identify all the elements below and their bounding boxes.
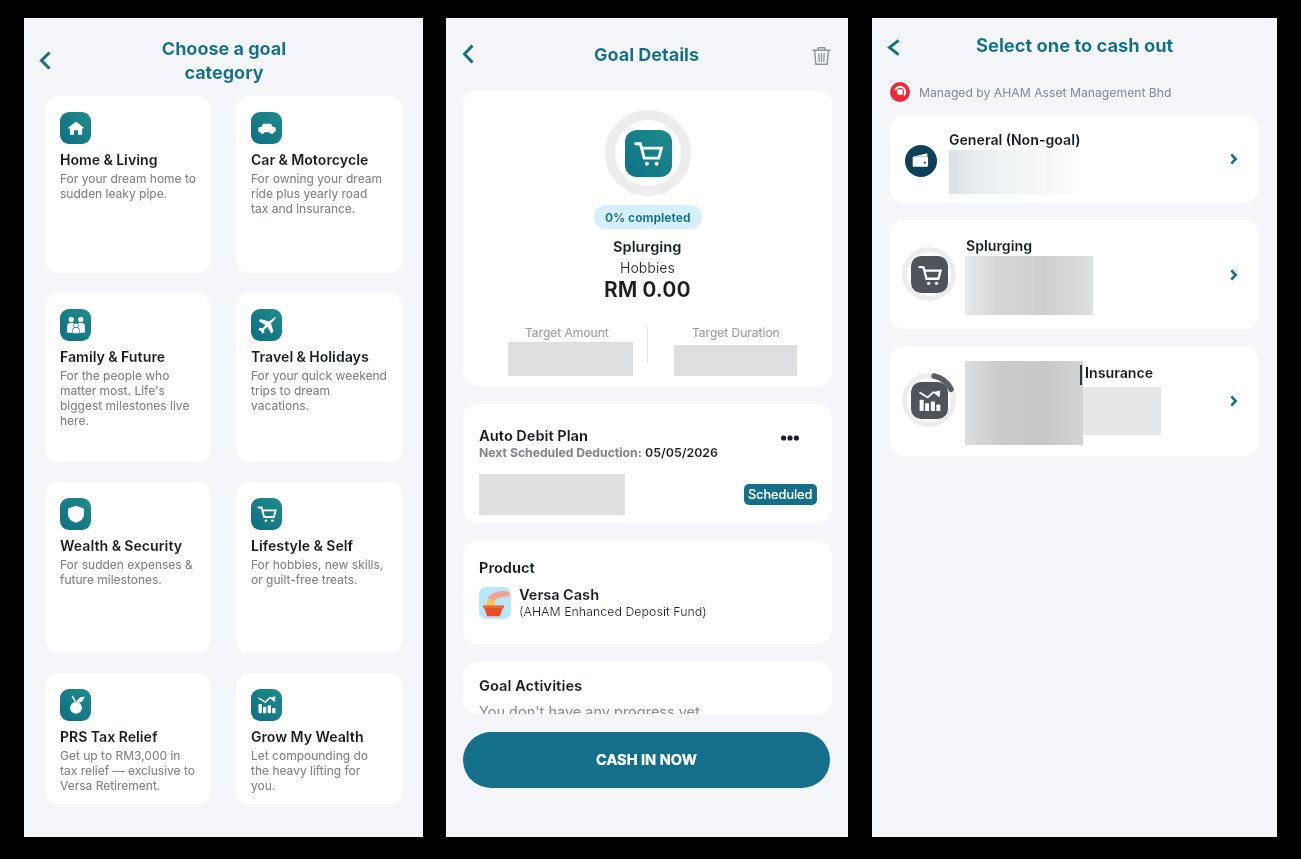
staticText: Car & Motorcycle — [251, 151, 369, 168]
staticText: Target Amount — [525, 325, 609, 340]
staticText: CASH IN NOW — [596, 751, 697, 769]
staticText: Select one to cash out — [976, 34, 1174, 56]
staticText: Grow My Wealth — [251, 728, 364, 745]
button[interactable]: Car & Motorcycle — [236, 96, 403, 273]
staticText: Family & Future — [60, 348, 166, 365]
staticText: Versa Cash — [519, 586, 600, 603]
staticText: For the people who matter most. Life's b… — [60, 368, 196, 428]
staticText: RM 0.00 — [604, 277, 691, 302]
staticText: Managed by AHAM Asset Management Bhd — [919, 85, 1172, 100]
staticText: Splurging — [966, 237, 1033, 254]
staticText: Lifestyle & Self — [251, 537, 354, 554]
staticText: Target Duration — [692, 325, 780, 340]
button[interactable]: Back — [888, 39, 900, 56]
staticText: For your dream home to sudden leaky pipe… — [60, 171, 196, 201]
staticText: Auto Debit Plan — [479, 427, 589, 445]
button[interactable]: Travel & Holidays — [236, 293, 403, 462]
staticText: Product — [479, 559, 535, 577]
button[interactable]: Grow My Wealth — [236, 673, 403, 804]
staticText: (AHAM Enhanced Deposit Fund) — [519, 604, 707, 619]
staticText: For owning your dream ride plus yearly r… — [251, 171, 387, 216]
staticText: Next Scheduled Deduction: — [479, 445, 645, 460]
button[interactable]: General (Non-goal) — [890, 115, 1259, 203]
staticText: Home & Living — [60, 151, 158, 168]
staticText: Goal Activities — [479, 677, 583, 695]
staticText: Choose a goal category — [104, 38, 344, 83]
staticText: For sudden expenses & future milestones. — [60, 557, 196, 587]
button[interactable]: More options — [778, 426, 802, 450]
staticText: General (Non-goal) — [949, 131, 1081, 148]
staticText: Insurance — [1085, 364, 1154, 381]
staticText: Get up to RM3,000 in tax relief — exclus… — [60, 748, 196, 793]
staticText: For your quick weekend trips to dream va… — [251, 368, 387, 413]
staticText: Wealth & Security — [60, 537, 183, 554]
button[interactable]: Splurging — [890, 220, 1259, 329]
staticText: Goal Details — [594, 44, 700, 66]
staticText: Hobbies — [620, 259, 675, 276]
button[interactable]: Scheduled — [744, 484, 817, 505]
staticText: 0% completed — [605, 210, 691, 225]
staticText: 05/05/2026 — [645, 445, 718, 460]
staticText: For hobbies, new skills, or guilt-free t… — [251, 557, 387, 587]
button[interactable]: Back — [40, 51, 51, 70]
button[interactable]: Family & Future — [45, 293, 211, 462]
staticText: Travel & Holidays — [251, 348, 369, 365]
staticText: Splurging — [613, 238, 682, 256]
button[interactable]: Home & Living — [45, 96, 211, 273]
button[interactable]: Insurance — [890, 346, 1259, 456]
button[interactable]: Back — [463, 44, 474, 64]
staticText: Let compounding do the heavy lifting for… — [251, 748, 387, 793]
button[interactable]: Wealth & Security — [45, 482, 211, 653]
staticText: PRS Tax Relief — [60, 728, 158, 745]
button[interactable]: CASH IN NOW — [463, 732, 830, 788]
staticText: Scheduled — [748, 487, 813, 502]
button[interactable]: PRS Tax Relief — [45, 673, 211, 804]
staticText: You don't have any progress yet. — [479, 703, 704, 714]
button[interactable]: Delete — [808, 42, 834, 68]
button[interactable]: Lifestyle & Self — [236, 482, 403, 653]
